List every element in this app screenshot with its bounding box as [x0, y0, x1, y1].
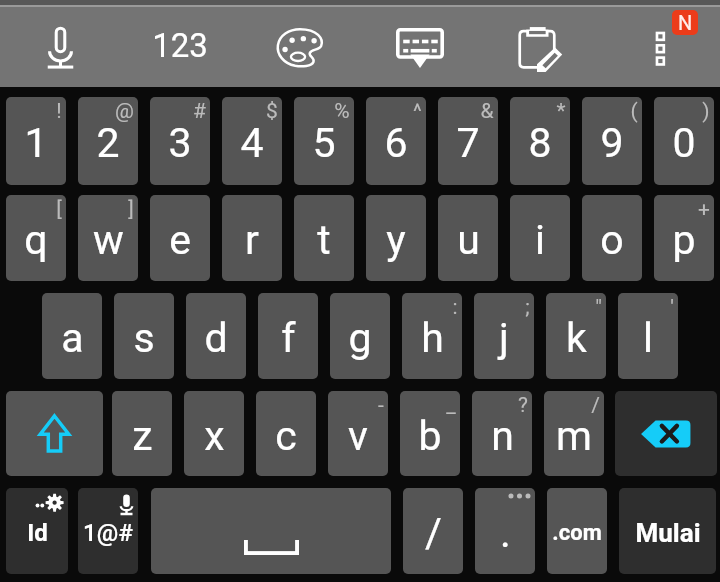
button[interactable]: More options: [600, 7, 720, 87]
staticText: [: [56, 197, 62, 222]
button[interactable]: @: [78, 97, 138, 185]
staticText: p: [672, 216, 696, 264]
button[interactable]: g: [330, 293, 390, 379]
button[interactable]: 1@#: [78, 488, 138, 574]
staticText: k: [566, 314, 587, 362]
staticText: a: [61, 314, 84, 362]
staticText: +: [698, 197, 710, 222]
button[interactable]: !: [6, 97, 66, 185]
staticText: /: [591, 393, 600, 418]
staticText: ]: [128, 197, 134, 222]
button[interactable]: Numbers: [120, 7, 240, 87]
staticText: n: [491, 412, 514, 460]
button[interactable]: Clipboard: [480, 7, 600, 87]
button[interactable]: -: [328, 391, 388, 476]
button[interactable]: a: [42, 293, 102, 379]
button[interactable]: .: [475, 488, 535, 574]
button[interactable]: Theme: [240, 7, 360, 87]
button[interactable]: /: [403, 488, 463, 574]
staticText: j: [499, 314, 509, 362]
button[interactable]: y: [366, 195, 426, 281]
staticText: .: [500, 509, 511, 557]
staticText: 0: [672, 119, 696, 167]
button[interactable]: s: [114, 293, 174, 379]
staticText: 123: [152, 26, 208, 65]
staticText: q: [24, 216, 48, 264]
staticText: ': [670, 295, 674, 320]
button[interactable]: /: [544, 391, 604, 476]
staticText: x: [204, 412, 225, 460]
staticText: @: [115, 99, 134, 124]
staticText: -: [378, 393, 384, 418]
button[interactable]: +: [654, 195, 714, 281]
button[interactable]: [151, 488, 391, 574]
button[interactable]: ': [618, 293, 678, 379]
staticText: _: [446, 393, 456, 418]
staticText: ^: [413, 99, 422, 124]
staticText: ;: [525, 295, 530, 320]
button[interactable]: _: [400, 391, 460, 476]
button[interactable]: ;: [474, 293, 534, 379]
button[interactable]: Mulai: [619, 488, 716, 574]
staticText: f: [281, 314, 296, 362]
staticText: w: [93, 216, 124, 264]
button[interactable]: i: [510, 195, 570, 281]
button[interactable]: (: [582, 97, 642, 185]
staticText: ?: [518, 393, 528, 418]
staticText: v: [348, 412, 368, 460]
staticText: Mulai: [635, 518, 701, 548]
staticText: r: [245, 216, 259, 264]
staticText: z: [132, 412, 153, 460]
staticText: :: [452, 295, 458, 320]
staticText: o: [600, 216, 624, 264]
button[interactable]: Voice input: [0, 7, 120, 87]
staticText: c: [275, 412, 297, 460]
button[interactable]: o: [582, 195, 642, 281]
staticText: m: [556, 412, 592, 460]
button[interactable]: :: [402, 293, 462, 379]
button[interactable]: ": [546, 293, 606, 379]
staticText: i: [535, 216, 545, 264]
button[interactable]: e: [150, 195, 210, 281]
staticText: s: [133, 314, 155, 362]
button[interactable]: [615, 391, 717, 476]
staticText: 7: [456, 119, 480, 167]
staticText: *: [556, 99, 566, 124]
button[interactable]: r: [222, 195, 282, 281]
staticText: e: [169, 216, 191, 264]
button[interactable]: z: [112, 391, 172, 476]
button[interactable]: $: [222, 97, 282, 185]
staticText: 1: [24, 119, 48, 167]
staticText: 2: [96, 119, 120, 167]
button[interactable]: %: [294, 97, 354, 185]
staticText: #: [193, 99, 206, 124]
button[interactable]: .com: [547, 488, 607, 574]
button[interactable]: Hide keyboard: [360, 7, 480, 87]
staticText: 4: [240, 119, 264, 167]
staticText: Id: [27, 519, 48, 547]
button[interactable]: *: [510, 97, 570, 185]
staticText: b: [418, 412, 442, 460]
button[interactable]: ]: [78, 195, 138, 281]
button[interactable]: ?: [472, 391, 532, 476]
staticText: l: [643, 314, 653, 362]
button[interactable]: Id: [6, 488, 68, 574]
button[interactable]: f: [258, 293, 318, 379]
staticText: ": [595, 295, 602, 320]
button[interactable]: d: [186, 293, 246, 379]
button[interactable]: [: [6, 195, 66, 281]
button[interactable]: u: [438, 195, 498, 281]
staticText: 8: [528, 119, 552, 167]
button[interactable]: x: [184, 391, 244, 476]
button[interactable]: &: [438, 97, 498, 185]
staticText: 6: [384, 119, 408, 167]
button[interactable]: t: [294, 195, 354, 281]
staticText: 3: [168, 119, 192, 167]
button[interactable]: [6, 391, 103, 476]
button[interactable]: ^: [366, 97, 426, 185]
staticText: g: [348, 314, 372, 362]
staticText: &: [480, 99, 494, 124]
button[interactable]: ): [654, 97, 714, 185]
button[interactable]: #: [150, 97, 210, 185]
button[interactable]: c: [256, 391, 316, 476]
